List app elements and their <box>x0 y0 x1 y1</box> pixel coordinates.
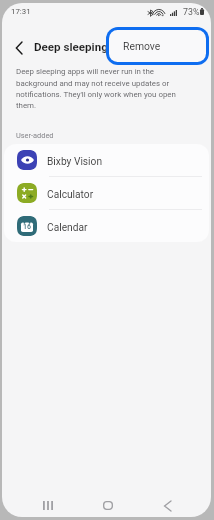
button[interactable]: Calculator <box>4 177 209 209</box>
button[interactable]: Navigate up <box>8 37 30 59</box>
staticText: Calendar <box>47 222 88 234</box>
staticText: 17:31 <box>11 7 31 16</box>
button[interactable]: 16 <box>4 210 209 242</box>
staticText: Calculator <box>47 189 94 201</box>
staticText: Deep sleeping apps will never run in the… <box>16 67 176 110</box>
staticText: Bixby Vision <box>47 156 103 168</box>
button[interactable]: Back <box>153 492 181 517</box>
button[interactable]: Remove <box>109 30 206 62</box>
staticText: 16 <box>23 223 31 231</box>
staticText: Remove <box>123 40 161 52</box>
staticText: Deep sleeping <box>34 40 108 54</box>
button[interactable]: Recent apps <box>34 491 62 517</box>
staticText: User-added <box>16 131 54 140</box>
button[interactable]: Bixby Vision <box>4 144 209 176</box>
button[interactable]: Home <box>94 491 122 517</box>
staticText: 73% <box>183 7 200 17</box>
